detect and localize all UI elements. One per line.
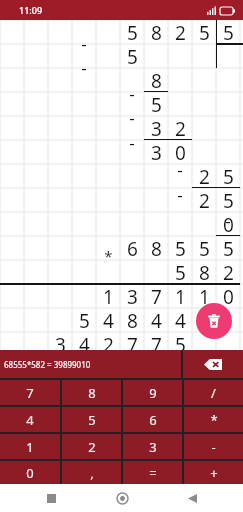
button[interactable]: 7: [0, 380, 60, 405]
button[interactable]: 68555*582 = 39899010: [0, 350, 181, 378]
staticText: 3: [149, 438, 157, 456]
staticText: -: [129, 82, 135, 105]
staticText: 4: [79, 332, 90, 356]
staticText: 9: [127, 356, 138, 380]
staticText: -: [177, 158, 183, 181]
staticText: 5: [199, 20, 210, 44]
button[interactable]: Back: [172, 484, 212, 512]
staticText: 5: [127, 44, 138, 68]
staticText: 8: [79, 356, 90, 380]
button[interactable]: Clear: [196, 303, 232, 339]
button[interactable]: 8: [62, 380, 121, 405]
button[interactable]: 3: [123, 434, 182, 459]
staticText: 8: [151, 68, 162, 92]
staticText: 11:09: [19, 4, 43, 16]
staticText: 7: [151, 284, 162, 308]
staticText: *: [104, 246, 113, 266]
staticText: 6: [127, 236, 138, 260]
button[interactable]: 0: [0, 461, 60, 484]
staticText: 2: [199, 188, 210, 212]
staticText: 0: [223, 284, 234, 308]
staticText: 0: [223, 212, 234, 236]
staticText: -: [211, 438, 216, 456]
staticText: 3: [31, 356, 42, 380]
staticText: 0: [199, 308, 210, 332]
staticText: 8: [199, 260, 210, 284]
staticText: 9: [55, 356, 66, 380]
staticText: 5: [88, 411, 96, 429]
staticText: 2: [88, 438, 96, 456]
staticText: 7: [151, 332, 162, 356]
staticText: 1: [26, 438, 34, 456]
button[interactable]: ,: [62, 461, 121, 484]
staticText: ,: [90, 464, 94, 482]
staticText: 5: [151, 92, 162, 116]
staticText: 2: [223, 260, 234, 284]
staticText: =: [149, 464, 157, 482]
staticText: 5: [127, 20, 138, 44]
staticText: +: [210, 464, 218, 482]
staticText: 5: [199, 236, 210, 260]
staticText: 9: [149, 384, 157, 402]
staticText: -: [129, 106, 135, 129]
staticText: 3: [55, 332, 66, 356]
staticText: 3: [151, 116, 162, 140]
staticText: 5: [223, 236, 234, 260]
button[interactable]: Home: [102, 484, 142, 512]
button[interactable]: -: [184, 434, 243, 459]
staticText: 8: [88, 384, 96, 402]
button[interactable]: 4: [0, 407, 60, 432]
staticText: 8: [151, 20, 162, 44]
staticText: 6: [149, 411, 157, 429]
button[interactable]: /: [184, 380, 243, 405]
staticText: 2: [175, 20, 186, 44]
staticText: 3: [127, 284, 138, 308]
staticText: -: [81, 32, 87, 55]
staticText: 4: [26, 411, 34, 429]
button[interactable]: +: [184, 461, 243, 484]
staticText: 2: [103, 332, 114, 356]
staticText: *: [210, 411, 218, 429]
staticText: 4: [175, 308, 186, 332]
staticText: -: [225, 209, 231, 232]
staticText: 1: [103, 284, 114, 308]
staticText: 8: [151, 236, 162, 260]
staticText: 0: [151, 356, 162, 380]
staticText: 2: [175, 116, 186, 140]
staticText: 68555*582 = 39899010: [4, 359, 91, 370]
staticText: 5: [223, 188, 234, 212]
staticText: -: [81, 56, 87, 79]
staticText: 7: [26, 384, 34, 402]
staticText: 5: [175, 332, 186, 356]
staticText: 4: [103, 308, 114, 332]
button[interactable]: =: [123, 461, 182, 484]
button[interactable]: 2: [62, 434, 121, 459]
button[interactable]: 5: [62, 407, 121, 432]
staticText: 4: [151, 308, 162, 332]
staticText: 8: [127, 308, 138, 332]
staticText: 0: [199, 356, 210, 380]
staticText: 1: [175, 284, 186, 308]
staticText: -: [177, 183, 183, 206]
staticText: 0: [26, 464, 34, 482]
staticText: 5: [175, 236, 186, 260]
staticText: 5: [175, 260, 186, 284]
button[interactable]: 6: [123, 407, 182, 432]
staticText: /: [211, 384, 216, 402]
staticText: 7: [127, 332, 138, 356]
staticText: 5: [79, 308, 90, 332]
staticText: 1: [199, 284, 210, 308]
staticText: 0: [175, 140, 186, 164]
staticText: 5: [223, 164, 234, 188]
staticText: 2: [199, 164, 210, 188]
staticText: -: [129, 131, 135, 154]
button[interactable]: Recents: [31, 484, 71, 512]
staticText: 3: [151, 140, 162, 164]
button[interactable]: *: [184, 407, 243, 432]
staticText: 9: [103, 356, 114, 380]
button[interactable]: 1: [0, 434, 60, 459]
staticText: 1: [175, 356, 186, 380]
button[interactable]: Backspace: [183, 350, 243, 378]
button[interactable]: 9: [123, 380, 182, 405]
staticText: 5: [223, 20, 234, 44]
